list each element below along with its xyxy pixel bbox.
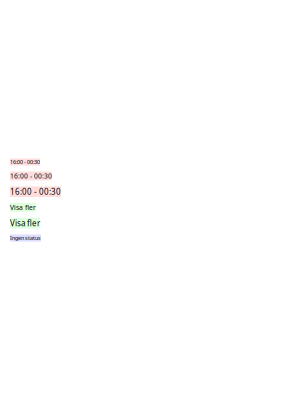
staticText: Visa fler bbox=[10, 218, 40, 228]
staticText: Visa fler bbox=[10, 203, 36, 212]
staticText: Ingen status bbox=[10, 234, 41, 242]
staticText: 16:00 - 00:30 bbox=[10, 171, 52, 180]
staticText: 16:00 - 00:30 bbox=[10, 186, 61, 197]
staticText: 16:00 - 00:30 bbox=[10, 158, 40, 165]
